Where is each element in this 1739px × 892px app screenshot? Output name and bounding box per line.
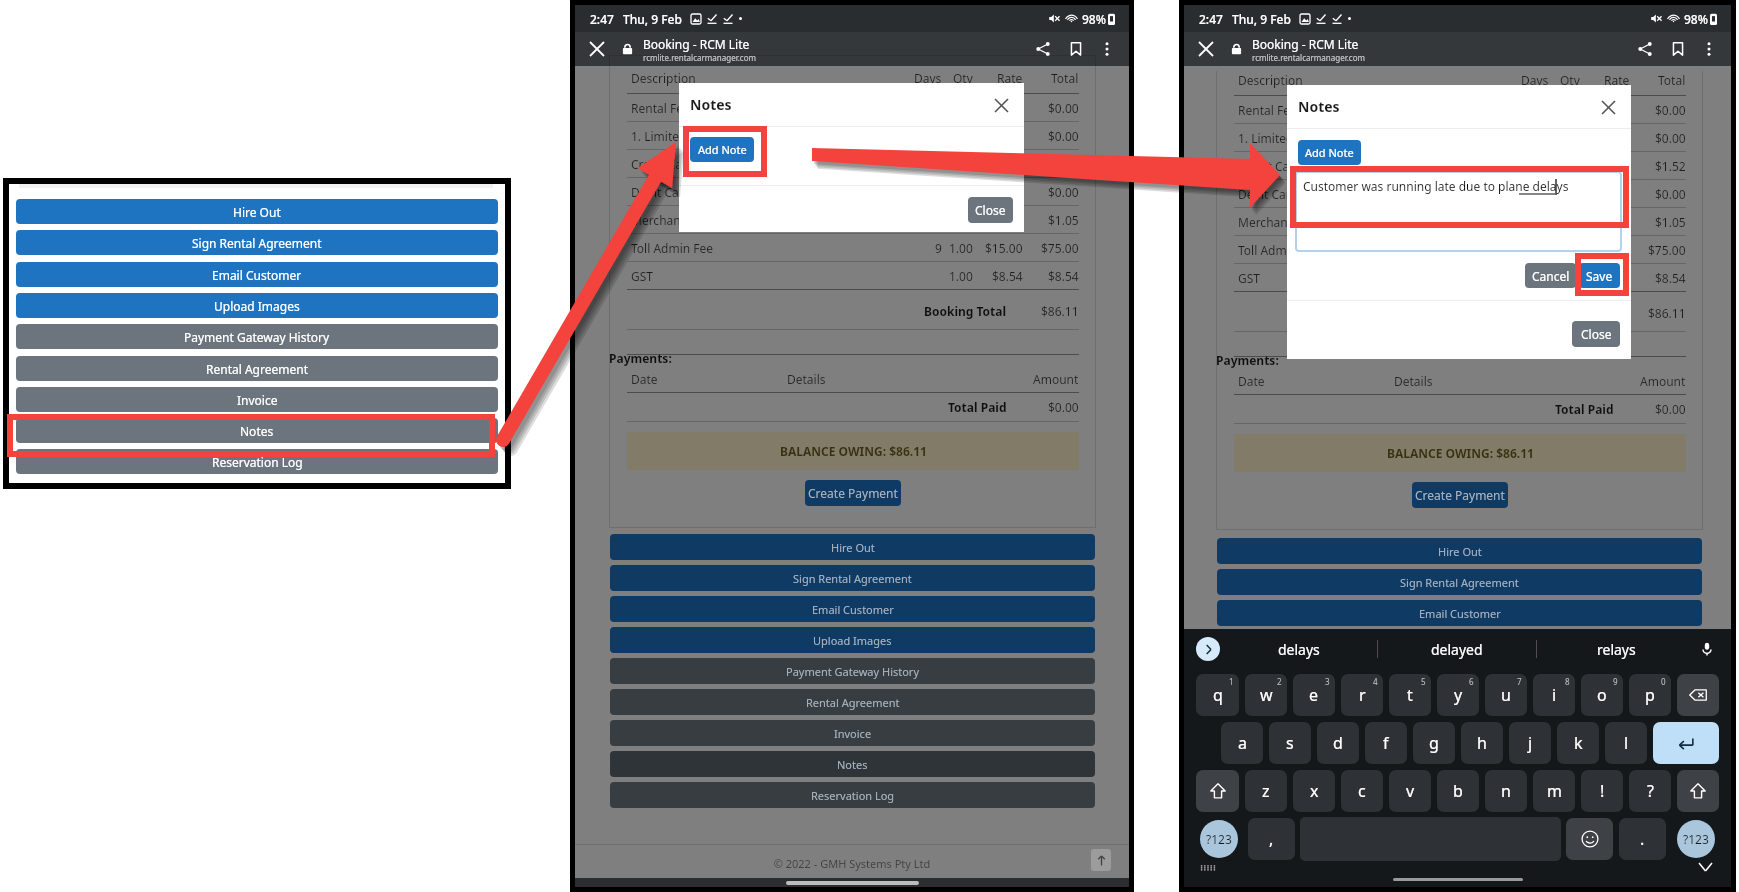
button[interactable]: r xyxy=(1341,674,1383,716)
button[interactable]: Hire Out xyxy=(16,199,498,224)
button[interactable]: delays xyxy=(1220,629,1377,669)
staticText: 5 xyxy=(1421,676,1426,687)
button[interactable]: t xyxy=(1389,674,1431,716)
staticText: Booking - RCM Lite xyxy=(1252,36,1359,52)
button[interactable]: u xyxy=(1485,674,1527,716)
button[interactable]: l xyxy=(1605,722,1647,764)
button[interactable]: ! xyxy=(1581,770,1623,812)
button[interactable]: Email Customer xyxy=(610,596,1095,622)
staticText: Cancel xyxy=(1532,268,1570,284)
button[interactable]: d xyxy=(1317,722,1359,764)
staticText: l xyxy=(1624,732,1629,754)
button[interactable]: relays xyxy=(1537,629,1695,669)
button[interactable]: . xyxy=(1619,818,1666,860)
button[interactable]: Emoji xyxy=(1566,818,1613,860)
button[interactable]: p xyxy=(1629,674,1671,716)
button[interactable]: Payment Gateway History xyxy=(16,324,498,349)
button[interactable]: Hire Out xyxy=(610,534,1095,560)
button[interactable]: Reservation Log xyxy=(16,449,498,474)
button[interactable]: y xyxy=(1437,674,1479,716)
button[interactable]: Close dialog xyxy=(990,94,1012,116)
staticText: 1. Limited xyxy=(631,128,690,144)
button[interactable]: Close dialog xyxy=(1597,96,1619,118)
staticText: 2 xyxy=(1277,676,1282,687)
staticText: $0.00 xyxy=(1655,401,1686,417)
button[interactable]: Upload Images xyxy=(16,293,498,318)
button[interactable]: Create Payment xyxy=(1412,482,1508,508)
button[interactable]: h xyxy=(1461,722,1503,764)
button[interactable]: o xyxy=(1581,674,1623,716)
button[interactable]: Notes xyxy=(610,751,1095,777)
button[interactable]: Share xyxy=(1632,36,1658,62)
button[interactable]: z xyxy=(1245,770,1287,812)
button[interactable]: , xyxy=(1248,818,1295,860)
button[interactable]: More options xyxy=(1696,36,1722,62)
button[interactable]: Email Customer xyxy=(16,262,498,287)
button[interactable]: e xyxy=(1293,674,1335,716)
button[interactable]: Customer was running late due to plane d… xyxy=(1295,171,1622,252)
button[interactable]: g xyxy=(1413,722,1455,764)
staticText: Debit Card xyxy=(631,184,691,200)
button[interactable]: Shift xyxy=(1677,770,1719,812)
button[interactable]: Create Payment xyxy=(805,480,901,506)
staticText: Close xyxy=(975,202,1006,218)
button[interactable]: s xyxy=(1269,722,1311,764)
button[interactable]: Enter xyxy=(1653,722,1719,764)
button[interactable]: Rental Agreement xyxy=(610,689,1095,715)
button[interactable]: i xyxy=(1533,674,1575,716)
button[interactable]: ?123 xyxy=(1200,820,1238,858)
button[interactable]: x xyxy=(1293,770,1335,812)
button[interactable]: Voice input xyxy=(1695,637,1719,661)
button[interactable]: Bookmark xyxy=(1063,36,1089,62)
staticText: Otv xyxy=(953,70,973,86)
staticText: Notes xyxy=(1298,97,1340,116)
button[interactable]: Upload Images xyxy=(610,627,1095,653)
button[interactable]: Shift xyxy=(1196,770,1239,812)
button[interactable]: Share xyxy=(1030,36,1056,62)
button[interactable]: delayed xyxy=(1378,629,1536,669)
button[interactable]: Expand toolbar xyxy=(1196,637,1220,661)
button[interactable]: q xyxy=(1196,674,1239,716)
button[interactable]: Rental Agreement xyxy=(16,356,498,381)
button[interactable]: b xyxy=(1437,770,1479,812)
button[interactable]: Hide keyboard xyxy=(1695,863,1715,871)
staticText: $0.00 xyxy=(1048,128,1079,144)
button[interactable]: ?123 xyxy=(1677,820,1715,858)
button[interactable]: w xyxy=(1245,674,1287,716)
button[interactable]: Add Note xyxy=(1298,140,1361,165)
button[interactable]: Email Customer xyxy=(1217,600,1702,626)
button[interactable]: Cancel xyxy=(1525,263,1576,288)
button[interactable]: Sign Rental Agreement xyxy=(610,565,1095,591)
button[interactable]: m xyxy=(1533,770,1575,812)
button[interactable]: k xyxy=(1557,722,1599,764)
button[interactable]: Save xyxy=(1579,263,1620,288)
button[interactable]: Bookmark xyxy=(1665,36,1691,62)
button[interactable]: Sign Rental Agreement xyxy=(16,230,498,255)
button[interactable]: Payment Gateway History xyxy=(610,658,1095,684)
button[interactable]: Invoice xyxy=(610,720,1095,746)
button[interactable]: Notes xyxy=(16,418,498,443)
button[interactable]: Close xyxy=(1572,321,1620,347)
button[interactable]: ? xyxy=(1629,770,1671,812)
button[interactable]: Scroll to top xyxy=(1091,849,1111,871)
staticText: Customer was running late due to plane d… xyxy=(1303,178,1569,194)
button[interactable]: Close xyxy=(968,197,1013,223)
button[interactable]: Hire Out xyxy=(1217,538,1702,564)
button[interactable]: f xyxy=(1365,722,1407,764)
button[interactable]: More options xyxy=(1094,36,1120,62)
button[interactable]: Keyboard settings xyxy=(1200,863,1216,871)
button[interactable]: n xyxy=(1485,770,1527,812)
button[interactable]: Add Note xyxy=(690,137,754,162)
button[interactable]: a xyxy=(1221,722,1263,764)
button[interactable]: Reservation Log xyxy=(610,782,1095,808)
button[interactable]: c xyxy=(1341,770,1383,812)
button[interactable]: Close xyxy=(1192,35,1220,63)
button[interactable]: Close xyxy=(583,35,611,63)
button[interactable]: j xyxy=(1509,722,1551,764)
button[interactable]: Invoice xyxy=(16,387,498,412)
staticText: BALANCE OWING: $86.11 xyxy=(780,443,927,459)
button[interactable]: Sign Rental Agreement xyxy=(1217,569,1702,595)
button[interactable]: Backspace xyxy=(1677,674,1719,716)
button[interactable]: v xyxy=(1389,770,1431,812)
